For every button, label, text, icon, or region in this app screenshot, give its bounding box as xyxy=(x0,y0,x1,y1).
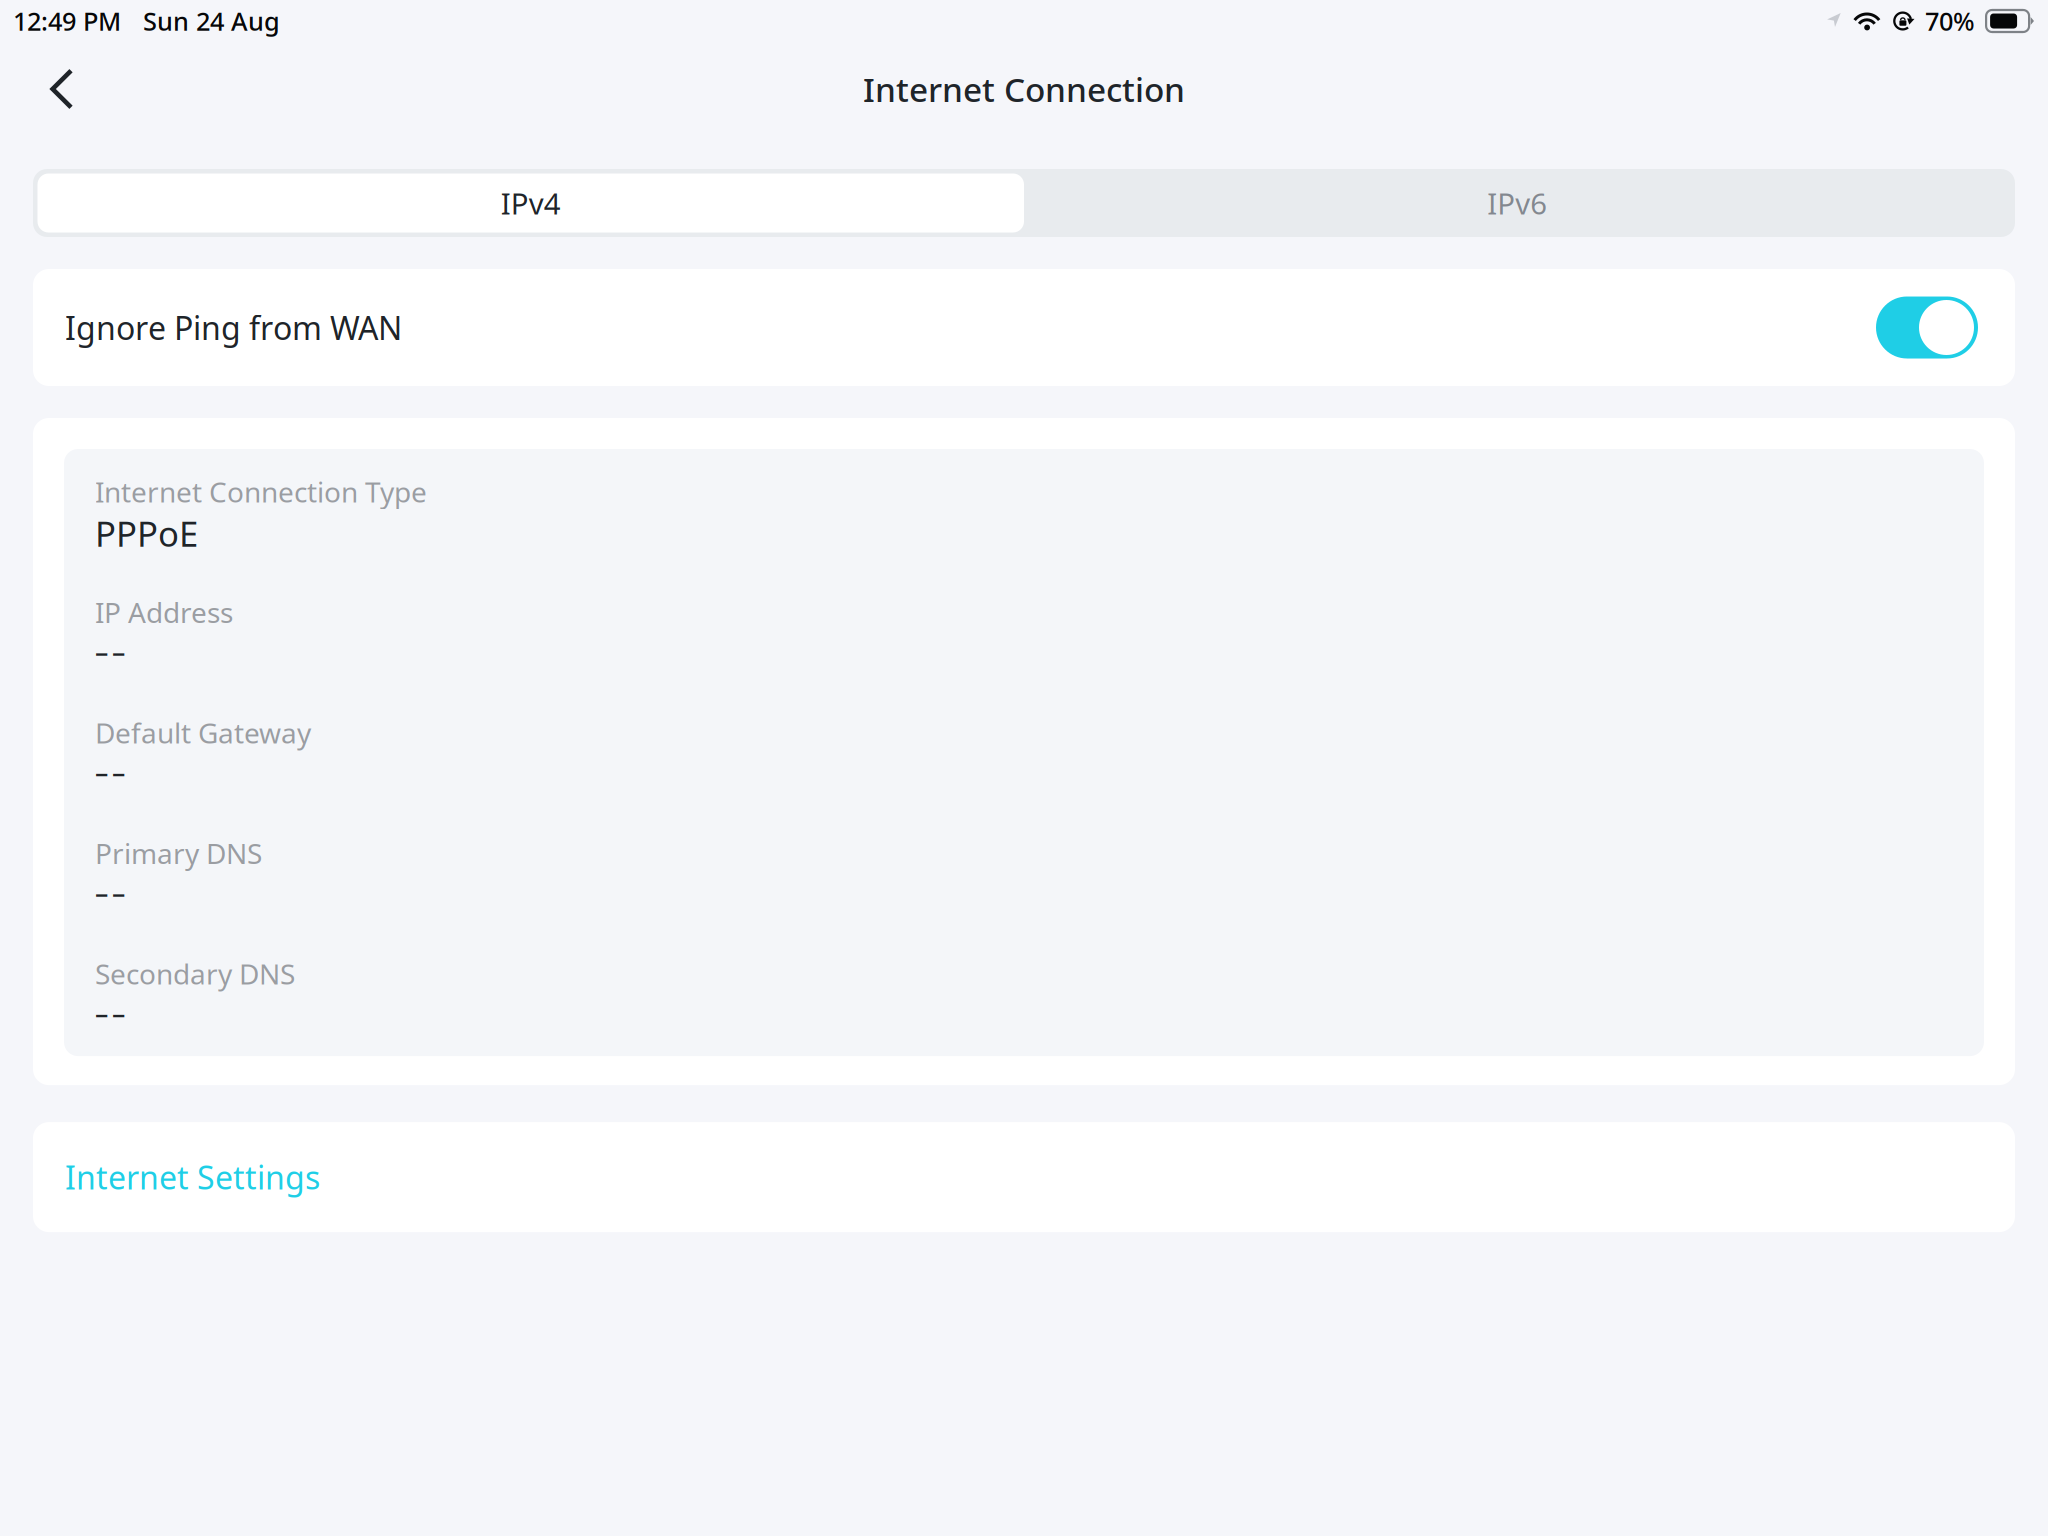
staticText: – – xyxy=(95,875,125,910)
button[interactable]: Back xyxy=(29,58,95,120)
staticText: Primary DNS xyxy=(95,834,262,872)
staticText: PPPoE xyxy=(95,510,198,556)
staticText: IPv4 xyxy=(501,183,561,222)
staticText: – – xyxy=(95,995,125,1030)
staticText: IPv6 xyxy=(1487,183,1547,222)
staticText: Secondary DNS xyxy=(95,955,295,992)
staticText: – – xyxy=(95,754,125,789)
staticText: Sun 24 Aug xyxy=(143,4,280,38)
button[interactable]: Ignore Ping from WAN xyxy=(1876,296,1978,358)
staticText: IP Address xyxy=(95,593,233,631)
staticText: Internet Connection Type xyxy=(95,473,427,510)
button[interactable]: Internet Settings xyxy=(0,1122,2048,1232)
staticText: Ignore Ping from WAN xyxy=(65,306,402,349)
staticText: Internet Settings xyxy=(65,1156,320,1198)
staticText: 12:49 PM xyxy=(13,4,121,38)
button[interactable]: IPv6 xyxy=(1024,173,2010,232)
button[interactable]: IPv4 xyxy=(37,173,1024,232)
staticText: – – xyxy=(95,634,125,669)
staticText: Internet Connection xyxy=(863,67,1185,111)
staticText: Default Gateway xyxy=(95,714,311,751)
staticText: 70% xyxy=(1925,4,1975,38)
